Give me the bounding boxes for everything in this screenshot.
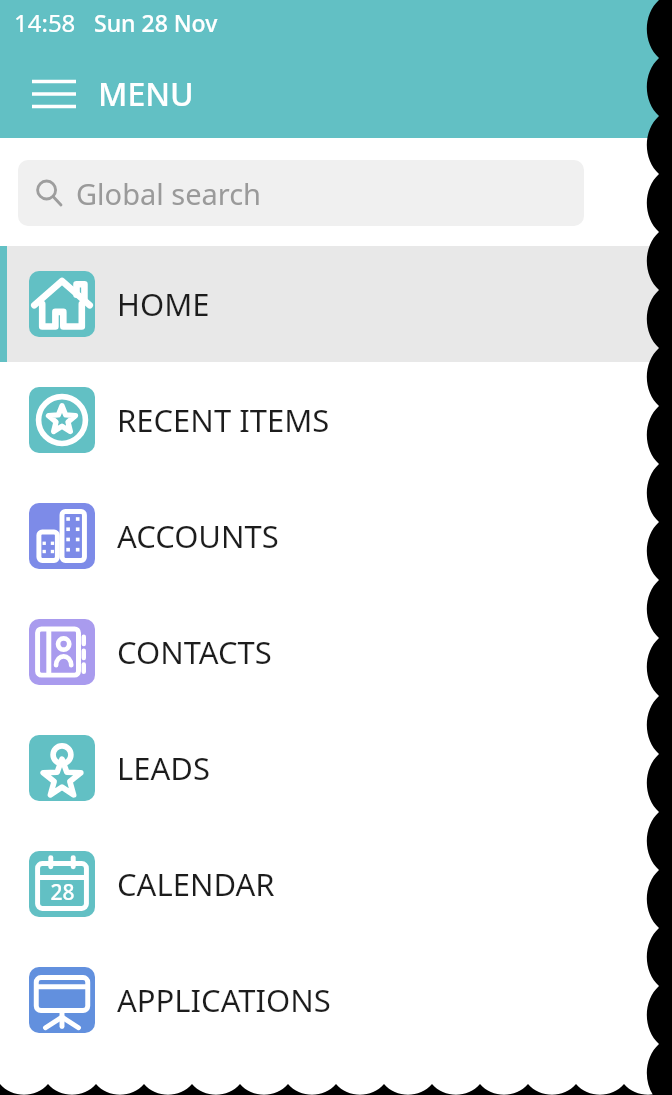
- staticText: HOME: [117, 283, 210, 325]
- button[interactable]: HOME: [0, 246, 672, 362]
- staticText: CONTACTS: [117, 631, 272, 673]
- button[interactable]: LEADS: [0, 710, 672, 826]
- button[interactable]: Open navigation menu: [18, 58, 90, 130]
- staticText: 28: [50, 878, 75, 907]
- button[interactable]: APPLICATIONS: [0, 942, 672, 1058]
- staticText: Sun 28 Nov: [94, 7, 218, 38]
- staticText: MENU: [98, 72, 194, 116]
- button[interactable]: Global search: [18, 160, 584, 226]
- staticText: APPLICATIONS: [117, 979, 331, 1021]
- staticText: RECENT ITEMS: [117, 399, 330, 441]
- staticText: CALENDAR: [117, 863, 275, 905]
- button[interactable]: CONTACTS: [0, 594, 672, 710]
- button[interactable]: ACCOUNTS: [0, 478, 672, 594]
- staticText: LEADS: [117, 747, 210, 789]
- button[interactable]: 28: [0, 826, 672, 942]
- staticText: ACCOUNTS: [117, 515, 279, 557]
- button[interactable]: RECENT ITEMS: [0, 362, 672, 478]
- staticText: 14:58: [14, 6, 76, 39]
- staticText: Global search: [76, 174, 262, 213]
